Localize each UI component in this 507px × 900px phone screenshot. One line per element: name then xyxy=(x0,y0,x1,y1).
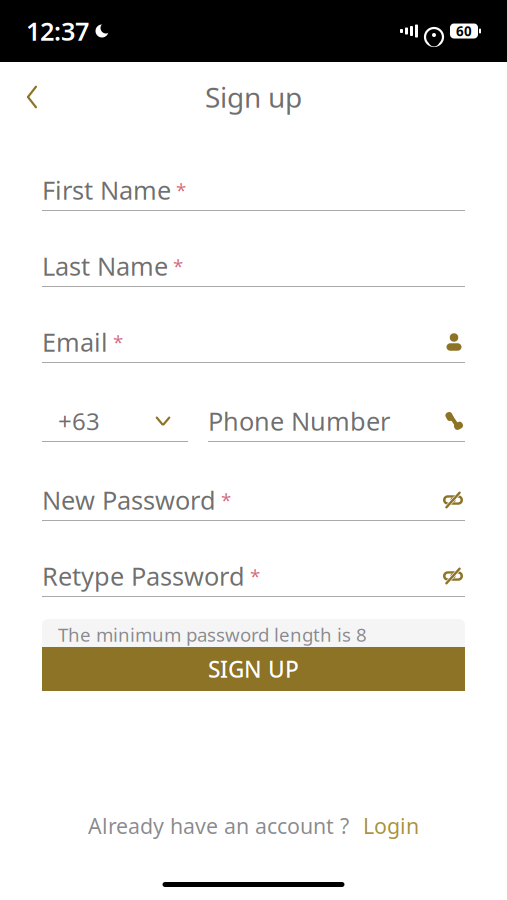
staticText: * xyxy=(168,254,183,278)
staticText: New Password xyxy=(42,483,216,517)
staticText: Retype Password xyxy=(42,559,245,593)
staticText: 12:37 xyxy=(26,14,89,48)
staticText: SIGN UP xyxy=(208,654,299,684)
button[interactable]: SIGN UP xyxy=(42,647,465,691)
staticText: Email xyxy=(42,325,108,359)
staticText: Last Name xyxy=(42,249,168,283)
button[interactable]: Phone xyxy=(443,410,465,432)
button[interactable]: Back xyxy=(8,74,56,120)
staticText: * xyxy=(245,564,260,588)
button[interactable]: Show password xyxy=(441,489,465,511)
staticText: Phone Number xyxy=(208,404,390,438)
staticText: Login xyxy=(363,812,419,840)
button[interactable]: Login xyxy=(363,812,419,840)
staticText: First Name xyxy=(42,173,171,207)
staticText: The minimum password length is 8 charact… xyxy=(58,622,367,672)
button[interactable]: Choose contact xyxy=(443,331,465,353)
button[interactable]: Country code +63 xyxy=(42,401,188,442)
staticText: * xyxy=(216,488,231,512)
staticText: +63 xyxy=(58,405,100,437)
staticText: * xyxy=(171,178,186,202)
staticText: 60 xyxy=(456,22,472,40)
staticText: * xyxy=(108,330,123,354)
button[interactable]: Show password xyxy=(441,565,465,587)
staticText: Sign up xyxy=(205,78,302,116)
staticText: Already have an account ? xyxy=(88,812,349,840)
